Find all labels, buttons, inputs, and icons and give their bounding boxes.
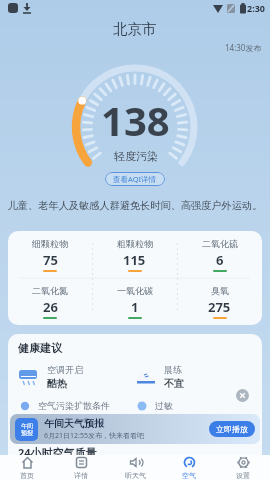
staticText: 26 — [43, 298, 58, 316]
staticText: 24小时空气质量 — [18, 445, 97, 460]
staticText: 健康建议 — [18, 341, 62, 355]
staticText: 查看AQI详情 — [113, 174, 157, 184]
staticText: 6月21日12:55发布，快来看看吧 — [44, 431, 144, 441]
staticText: 晨练 — [164, 364, 182, 375]
staticText: 酷热 — [47, 377, 67, 390]
staticText: 立即播放 — [216, 424, 248, 434]
button[interactable]: 午间 预报 — [10, 414, 260, 444]
staticText: 二氧化氮 — [32, 285, 68, 296]
staticText: 一氧化碳 — [117, 285, 153, 296]
staticText: 75 — [43, 251, 58, 269]
button[interactable]: 设置 — [216, 456, 270, 480]
button[interactable]: 北京市 — [0, 16, 270, 42]
button[interactable]: 二氧化硫 — [177, 238, 262, 272]
staticText: 过敏 — [155, 400, 173, 411]
staticText: 2:30 — [247, 2, 265, 14]
button[interactable]: 立即播放 — [209, 421, 255, 437]
staticText: 空调开启 — [47, 364, 83, 375]
button[interactable]: 首页 — [0, 456, 54, 480]
staticText: 首页 — [20, 471, 34, 480]
button[interactable]: 听天气 — [108, 456, 162, 480]
staticText: 14:30发布 — [225, 42, 262, 53]
staticText: 空气 — [182, 471, 196, 480]
staticText: 听天气 — [125, 471, 146, 480]
staticText: 臭氧 — [211, 285, 229, 296]
button[interactable]: 二氧化氮 — [8, 285, 92, 319]
staticText: 不宜 — [164, 377, 184, 390]
staticText: 午间 预报 — [21, 422, 33, 437]
button[interactable]: 臭氧 — [177, 285, 262, 319]
staticText: 二氧化硫 — [202, 238, 238, 249]
staticText: 空气污染扩散条件 — [38, 400, 110, 411]
button[interactable]: 一氧化碳 — [92, 285, 177, 319]
button[interactable]: 细颗粒物 — [8, 238, 92, 272]
staticText: 详情 — [74, 471, 88, 480]
staticText: 138 — [101, 93, 170, 147]
button[interactable]: 晨练 — [135, 364, 252, 390]
button[interactable]: 详情 — [54, 456, 108, 480]
staticText: 粗颗粒物 — [117, 238, 153, 249]
staticText: 轻度污染 — [114, 149, 158, 163]
button[interactable]: 空调开启 — [18, 364, 135, 390]
staticText: 儿童、老年人及敏感人群避免长时间、高强度户外运动。 — [0, 199, 270, 212]
staticText: 6 — [216, 251, 224, 269]
staticText: 细颗粒物 — [32, 238, 68, 249]
staticText: 115 — [123, 251, 146, 269]
staticText: 设置 — [236, 471, 250, 480]
button[interactable] — [236, 389, 249, 402]
button[interactable]: 空气 — [162, 456, 216, 480]
button[interactable]: 粗颗粒物 — [92, 238, 177, 272]
staticText: 午间天气预报 — [44, 417, 104, 430]
button[interactable]: 查看AQI详情 — [105, 172, 165, 186]
staticText: 1 — [131, 298, 139, 316]
staticText: 275 — [208, 298, 231, 316]
staticText: 北京市 — [113, 20, 157, 38]
